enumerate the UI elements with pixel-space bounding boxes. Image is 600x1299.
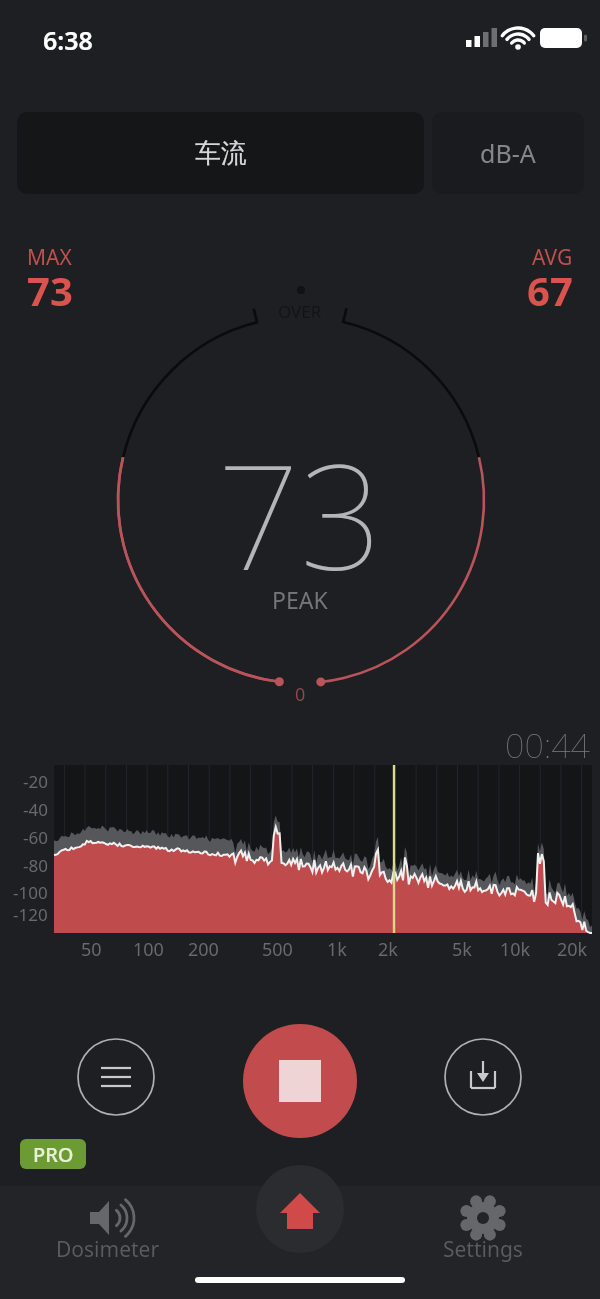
staticText: -80 — [23, 854, 48, 877]
staticText: 73 — [27, 263, 73, 317]
staticText: dB-A — [480, 136, 536, 170]
staticText: 73 — [217, 415, 383, 612]
staticText: 20k — [557, 937, 588, 962]
staticText: Dosimeter — [56, 1235, 160, 1264]
button[interactable]: Save — [445, 1039, 521, 1115]
staticText: 50 — [81, 937, 102, 962]
button[interactable]: dB-A — [432, 112, 584, 194]
staticText: -100 — [13, 881, 48, 904]
staticText: 6:38 — [43, 23, 93, 57]
staticText: Settings — [443, 1235, 523, 1264]
staticText: 1k — [327, 937, 347, 962]
staticText: OVER — [278, 300, 322, 323]
staticText: 10k — [500, 937, 531, 962]
staticText: -40 — [23, 798, 48, 821]
staticText: 0 — [295, 682, 306, 707]
button[interactable]: 车流 — [17, 112, 424, 194]
staticText: -120 — [13, 903, 48, 926]
staticText: MAX — [27, 243, 72, 272]
staticText: 2k — [378, 937, 398, 962]
staticText: 00:44 — [505, 722, 590, 768]
staticText: PRO — [33, 1141, 74, 1168]
staticText: 67 — [527, 263, 573, 317]
staticText: PEAK — [272, 584, 328, 615]
staticText: 100 — [133, 937, 164, 962]
button[interactable]: Dosimeter — [18, 1190, 198, 1270]
staticText: 车流 — [195, 137, 247, 170]
staticText: -20 — [23, 770, 48, 793]
staticText: 5k — [452, 937, 472, 962]
staticText: -60 — [23, 826, 48, 849]
button[interactable]: Settings — [393, 1190, 573, 1270]
staticText: 500 — [262, 937, 293, 962]
staticText: 200 — [188, 937, 219, 962]
button[interactable]: Home — [255, 1164, 345, 1254]
button[interactable]: Menu — [78, 1039, 154, 1115]
button[interactable]: PRO — [20, 1139, 86, 1169]
button[interactable]: Stop recording — [243, 1024, 357, 1138]
staticText: AVG — [532, 243, 573, 272]
